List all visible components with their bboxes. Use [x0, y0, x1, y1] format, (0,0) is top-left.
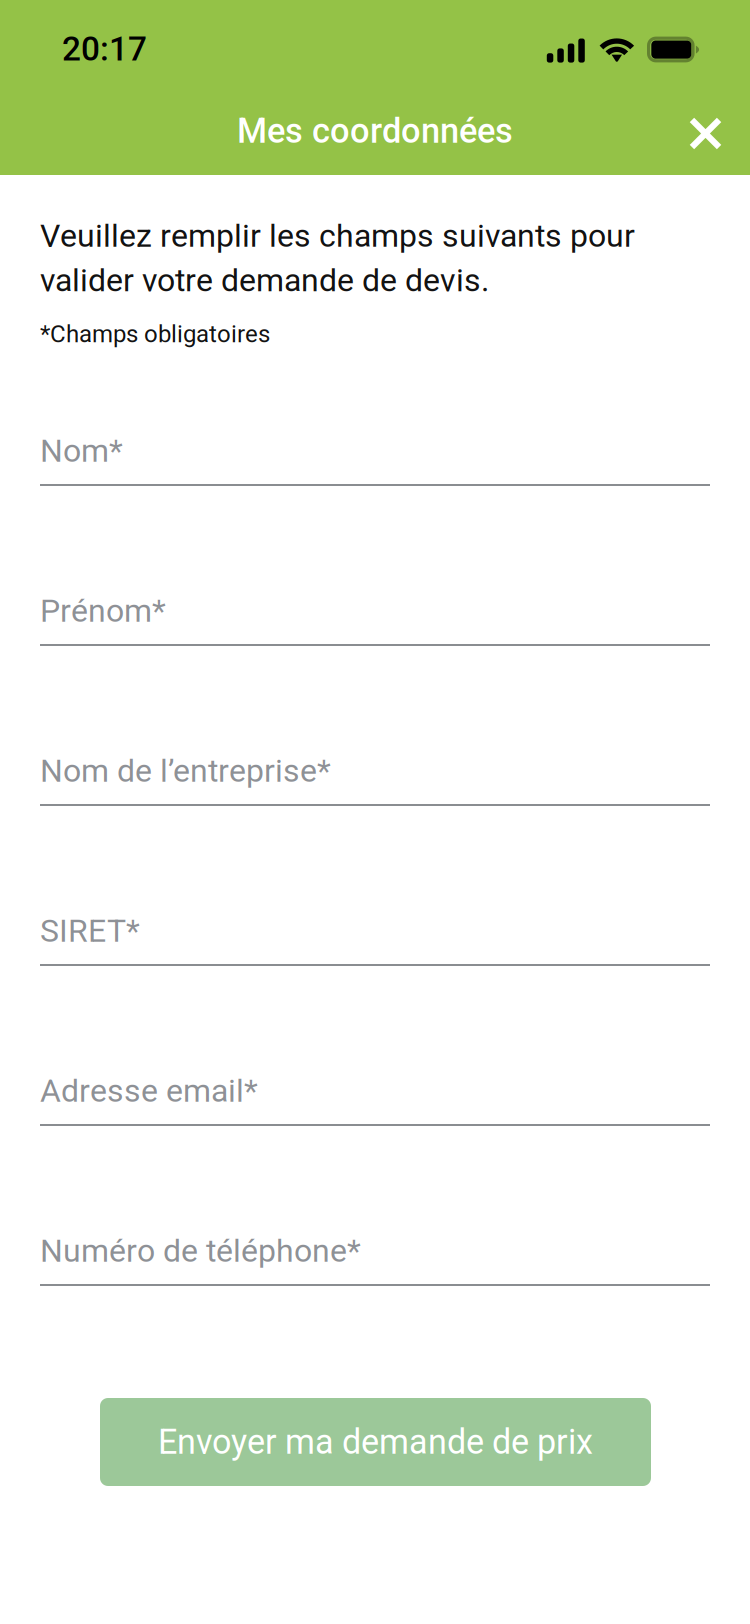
staticText: Adresse email* [40, 1072, 258, 1109]
button[interactable]: Adresse email* [40, 1070, 710, 1144]
staticText: Nom* [40, 432, 123, 469]
staticText: Envoyer ma demande de prix [158, 1422, 593, 1462]
button[interactable]: Nom de l’entreprise* [40, 750, 710, 824]
button[interactable]: Numéro de téléphone* [40, 1230, 710, 1304]
staticText: Veuillez remplir les champs suivants pou… [40, 217, 635, 299]
button[interactable]: Nom* [40, 430, 710, 504]
button[interactable]: Prénom* [40, 590, 710, 664]
staticText: Mes coordonnées [237, 111, 513, 151]
button[interactable]: SIRET* [40, 910, 710, 984]
staticText: *Champs obligatoires [40, 320, 270, 348]
staticText: Nom de l’entreprise* [40, 752, 331, 789]
button[interactable]: Envoyer ma demande de prix [100, 1398, 651, 1486]
staticText: Numéro de téléphone* [40, 1232, 361, 1269]
button[interactable]: Close [669, 97, 741, 169]
staticText: 20:17 [62, 29, 147, 69]
staticText: Prénom* [40, 592, 166, 629]
staticText: SIRET* [40, 912, 140, 949]
